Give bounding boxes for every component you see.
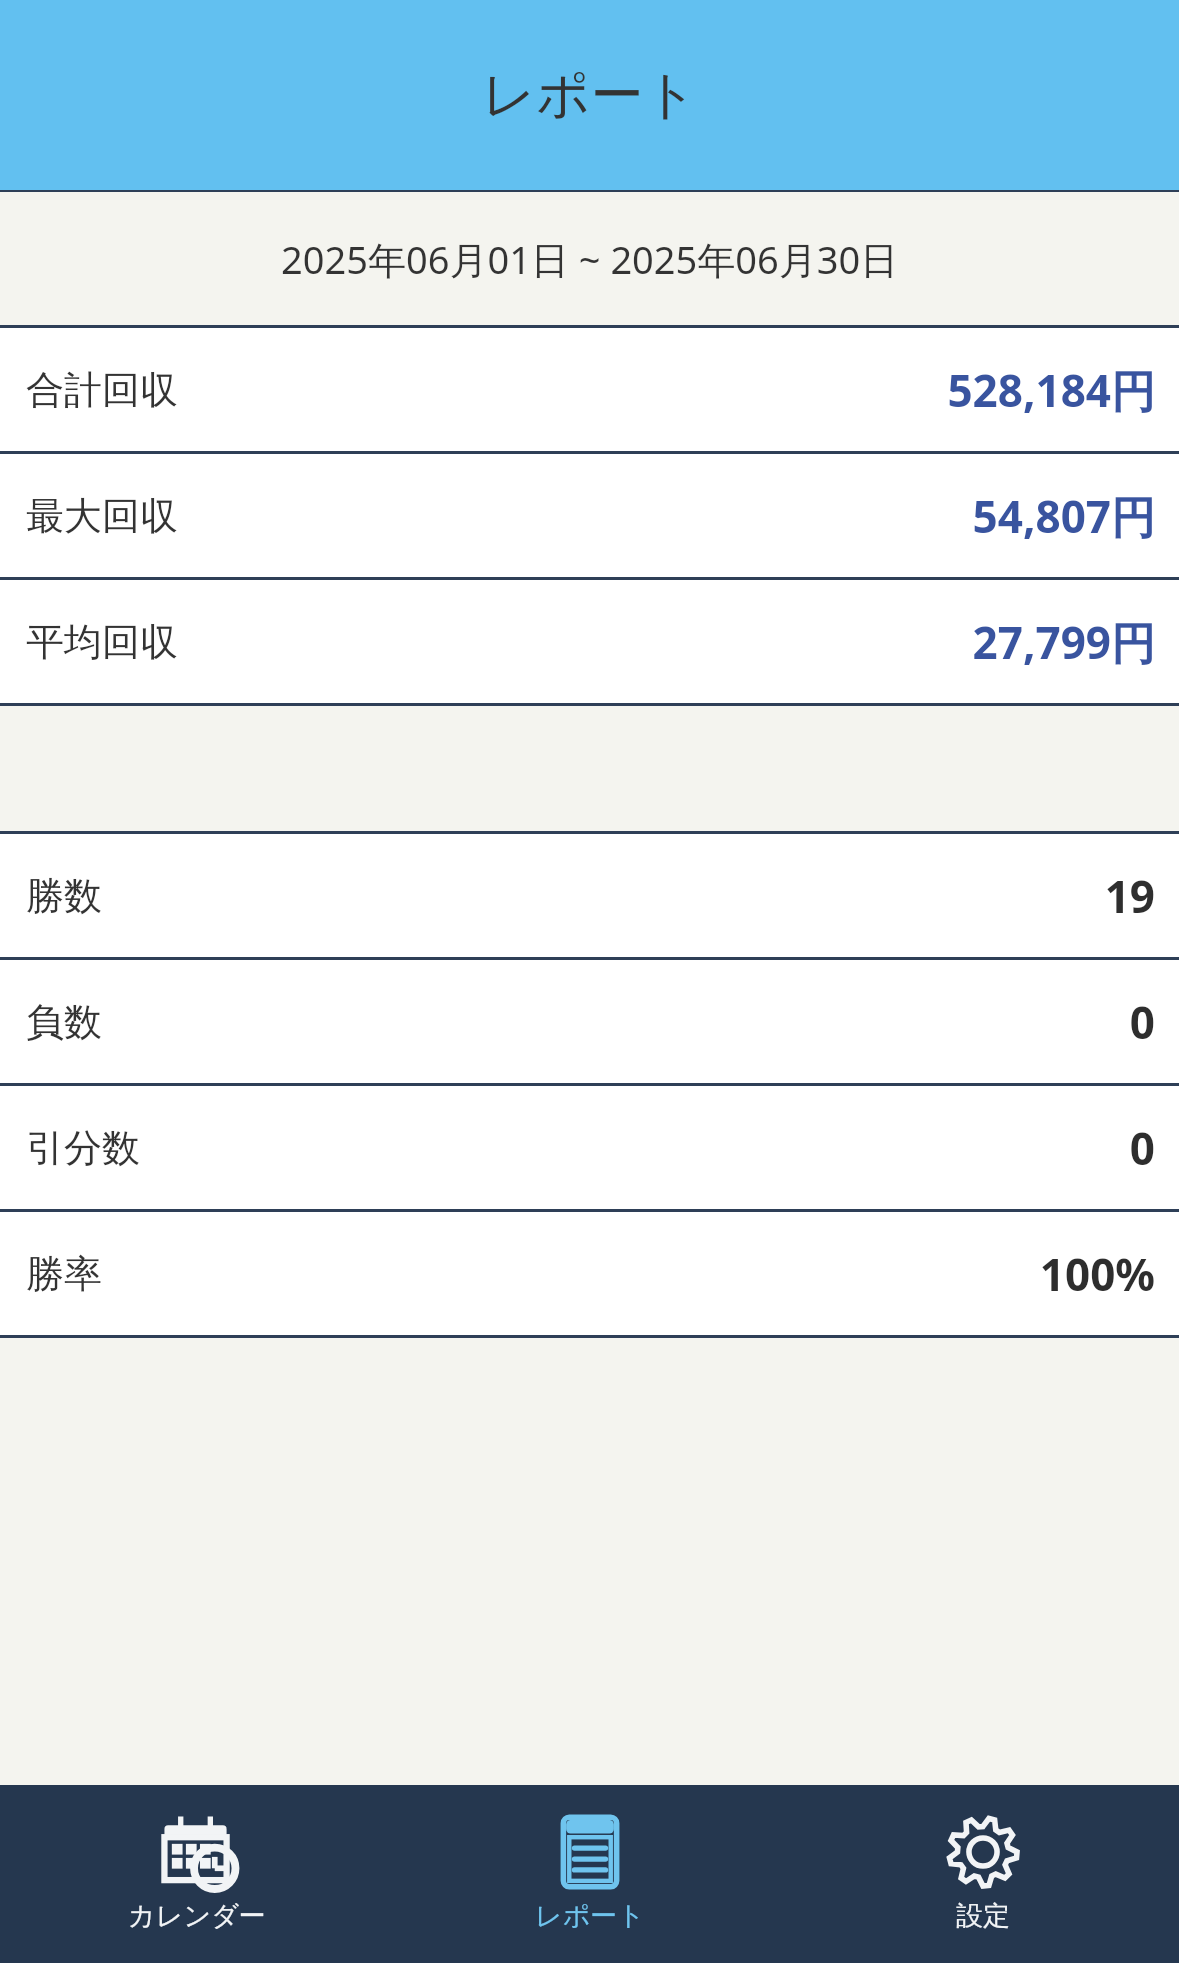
staticText: 0 xyxy=(1129,1118,1155,1178)
staticText: 負数 xyxy=(26,998,102,1046)
staticText: 19 xyxy=(1104,866,1155,926)
button[interactable]: 設定 xyxy=(786,1785,1179,1963)
staticText: 100% xyxy=(1039,1244,1155,1304)
staticText: 0 xyxy=(1129,992,1155,1052)
button[interactable]: 引分数 xyxy=(0,1086,1179,1209)
button[interactable]: 平均回収 xyxy=(0,580,1179,703)
button[interactable]: 2025年06月01日 ~ 2025年06月30日 xyxy=(0,192,1179,325)
button[interactable]: 負数 xyxy=(0,960,1179,1083)
staticText: レポート xyxy=(482,62,698,129)
staticText: レポート xyxy=(535,1899,645,1933)
button[interactable]: カレンダー xyxy=(0,1785,393,1963)
staticText: 27,799円 xyxy=(972,612,1155,672)
staticText: 勝数 xyxy=(26,872,102,920)
button[interactable]: 勝率 xyxy=(0,1212,1179,1335)
staticText: 勝率 xyxy=(26,1250,102,1298)
staticText: 設定 xyxy=(956,1899,1010,1933)
button[interactable]: レポート xyxy=(393,1785,786,1963)
staticText: 528,184円 xyxy=(947,360,1155,420)
staticText: 引分数 xyxy=(26,1124,140,1172)
button[interactable]: 合計回収 xyxy=(0,328,1179,451)
staticText: 54,807円 xyxy=(972,486,1155,546)
button[interactable]: 勝数 xyxy=(0,834,1179,957)
staticText: 合計回収 xyxy=(26,366,178,414)
staticText: 2025年06月01日 ~ 2025年06月30日 xyxy=(281,233,899,285)
staticText: 平均回収 xyxy=(26,618,178,666)
button[interactable]: 最大回収 xyxy=(0,454,1179,577)
staticText: カレンダー xyxy=(128,1899,266,1933)
staticText: 最大回収 xyxy=(26,492,178,540)
